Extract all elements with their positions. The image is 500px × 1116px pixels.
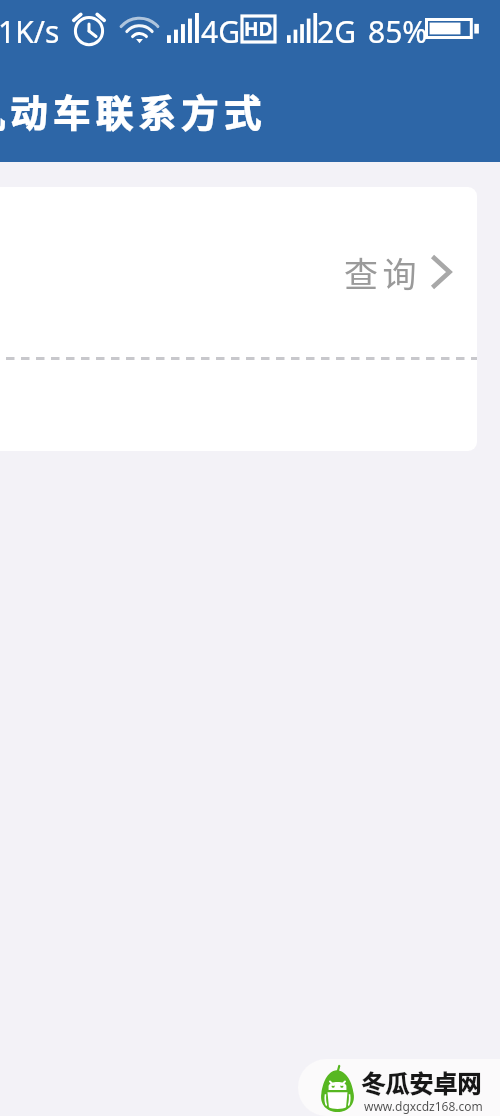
staticText: 4G — [201, 11, 240, 52]
staticText: www.dgxcdz168.com — [364, 1098, 483, 1114]
other: Alarm set — [72, 12, 106, 46]
staticText: 85% — [368, 11, 428, 52]
staticText: 2G — [317, 11, 356, 52]
staticText: 1K/s — [0, 11, 60, 52]
staticText: 机动车联系方式 — [0, 85, 267, 139]
staticText: 查询 — [344, 248, 421, 297]
button[interactable]: 查询 — [0, 187, 477, 357]
other: Battery 85 percent — [425, 18, 479, 39]
staticText: HD — [244, 16, 273, 42]
staticText: 冬瓜安卓网 — [361, 1065, 481, 1100]
other: SIM 2 signal — [287, 13, 320, 43]
other: 查询 — [430, 254, 452, 290]
other: Wi-Fi — [120, 15, 159, 44]
other: SIM 1 signal — [167, 13, 202, 43]
